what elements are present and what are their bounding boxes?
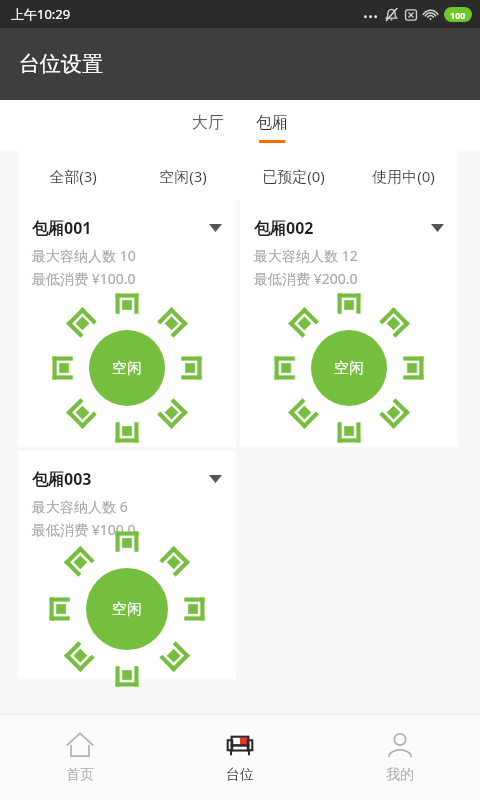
staticText: 最大容纳人数 12	[254, 246, 358, 265]
button[interactable]: 我的	[320, 715, 480, 800]
staticText: 台位设置	[19, 51, 103, 77]
button[interactable]: 首页	[0, 715, 160, 800]
staticText: 包厢	[256, 113, 288, 133]
staticText: 包厢002	[254, 217, 314, 239]
staticText: 台位	[226, 766, 254, 784]
staticText: 包厢001	[32, 217, 92, 239]
staticText: 使用中(0)	[372, 166, 435, 186]
staticText: 我的	[386, 766, 414, 784]
button[interactable]: 包厢003	[18, 451, 236, 679]
button[interactable]: 已预定(0)	[238, 151, 348, 200]
staticText: 上午10:29	[11, 5, 71, 23]
other: 台位	[225, 731, 255, 761]
staticText: 空闲	[112, 600, 142, 619]
staticText: 首页	[66, 766, 94, 784]
staticText: 大厅	[192, 113, 224, 133]
staticText: 全部(3)	[49, 166, 97, 186]
button[interactable]: 包厢	[250, 113, 294, 143]
staticText: 最低消费 ¥200.0	[254, 269, 358, 288]
button[interactable]: 台位	[160, 715, 320, 800]
staticText: 已预定(0)	[262, 166, 325, 186]
staticText: 最低消费 ¥100.0	[32, 520, 136, 539]
staticText: 最低消费 ¥100.0	[32, 269, 136, 288]
staticText: 空闲	[112, 359, 142, 378]
staticText: 最大容纳人数 6	[32, 497, 128, 516]
button[interactable]: 空闲(3)	[128, 151, 238, 200]
button[interactable]: 更多操作	[203, 216, 227, 240]
button[interactable]: 大厅	[186, 113, 230, 143]
button[interactable]: 包厢001	[18, 200, 236, 447]
other: 我的	[385, 731, 415, 761]
staticText: 空闲	[334, 359, 364, 378]
button[interactable]: 使用中(0)	[348, 151, 458, 200]
staticText: 100	[450, 9, 466, 21]
staticText: 最大容纳人数 10	[32, 246, 136, 265]
button[interactable]: 更多操作	[203, 467, 227, 491]
button[interactable]: 包厢002	[240, 200, 458, 447]
staticText: 空闲(3)	[159, 166, 207, 186]
staticText: 包厢003	[32, 468, 92, 490]
button[interactable]: 更多操作	[425, 216, 449, 240]
other: 首页	[65, 731, 95, 761]
button[interactable]: 全部(3)	[18, 151, 128, 200]
